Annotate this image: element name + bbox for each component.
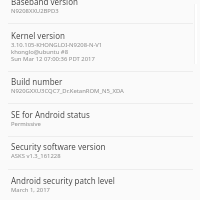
button[interactable]: SE for Android status [0, 104, 200, 136]
staticText: March 1, 2017 [11, 187, 50, 194]
button[interactable]: Security software version [0, 137, 200, 169]
staticText: ASKS v1.3_161228 [11, 153, 61, 160]
staticText: Kernel version [11, 32, 65, 42]
staticText: SE for Android status [11, 111, 90, 121]
staticText: Baseband version [11, 0, 78, 8]
button[interactable]: Baseband version [0, 0, 200, 23]
staticText: N9208XXU2BPD3 [11, 8, 59, 15]
staticText: Permissive [11, 121, 41, 128]
staticText: Security software version [11, 143, 106, 153]
staticText: N920GXXU3CQC7_Dr.KetanROM_N5_XDA [11, 88, 124, 95]
staticText: Build number [11, 78, 63, 88]
button[interactable]: Build number [0, 72, 200, 103]
staticText: Android security patch level [11, 177, 115, 187]
button[interactable]: Android security patch level [0, 170, 200, 200]
staticText: 3.10.105-KHONGLOI-N9208-N-V1 khonglo@ubu… [11, 42, 103, 63]
button[interactable]: Kernel version [0, 24, 200, 71]
